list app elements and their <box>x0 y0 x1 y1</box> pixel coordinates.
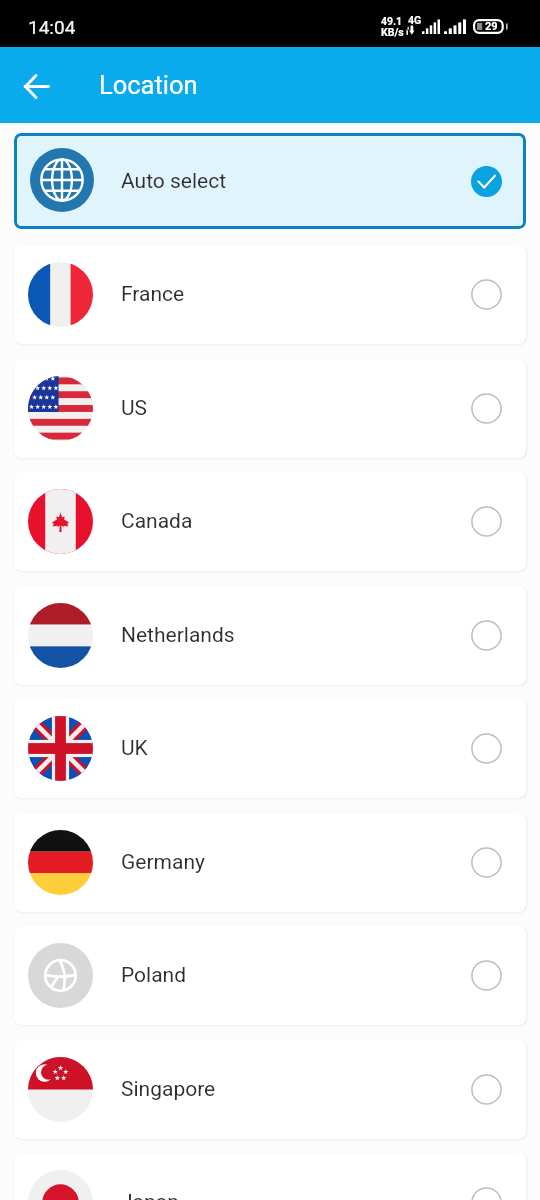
button[interactable]: Germany <box>14 813 526 912</box>
staticText: 49.1 <box>381 15 403 27</box>
staticText: Netherlands <box>121 623 235 648</box>
staticText: 14:04 <box>28 16 76 38</box>
staticText: France <box>121 282 185 307</box>
button[interactable]: US <box>14 359 526 458</box>
staticText: 29 <box>485 20 498 33</box>
button[interactable]: Japan <box>14 1153 526 1200</box>
button[interactable]: UK <box>14 699 526 798</box>
staticText: Japan <box>121 1190 179 1200</box>
staticText: US <box>121 396 148 421</box>
staticText: Canada <box>121 509 193 534</box>
button[interactable]: Poland <box>14 926 526 1025</box>
button[interactable]: France <box>14 245 526 344</box>
staticText: KB/s <box>381 26 404 38</box>
staticText: Singapore <box>121 1077 216 1102</box>
staticText: Poland <box>121 963 187 988</box>
staticText: Germany <box>121 850 205 875</box>
button[interactable]: Netherlands <box>14 586 526 685</box>
staticText: Location <box>99 70 198 100</box>
staticText: UK <box>121 736 148 761</box>
button[interactable]: Auto select <box>14 133 526 229</box>
staticText: 4G <box>408 14 422 26</box>
button[interactable]: Singapore <box>14 1040 526 1139</box>
staticText: Auto select <box>121 169 227 194</box>
button[interactable]: Canada <box>14 472 526 571</box>
button[interactable]: Back <box>10 59 62 111</box>
